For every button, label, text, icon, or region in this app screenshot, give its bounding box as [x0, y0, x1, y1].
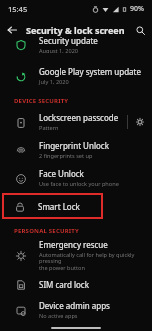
staticText: Use face to unlock your phone	[39, 180, 119, 188]
button[interactable]: Emergency rescue	[0, 238, 152, 272]
button[interactable]: Smart Lock	[2, 193, 103, 219]
staticText: 2 fingerprints set up	[39, 152, 93, 160]
staticText: 15:45	[8, 4, 28, 14]
staticText: Automatically call for help by quickly p…	[39, 251, 142, 272]
button[interactable]: SIM card lock	[0, 272, 152, 296]
staticText: Google Play system update	[39, 66, 142, 77]
button[interactable]: Google Play system update	[0, 62, 152, 90]
button[interactable]: Back	[0, 18, 24, 42]
staticText: August 1, 2020	[39, 47, 79, 53]
staticText: Device admin apps	[39, 300, 110, 311]
staticText: Smart Lock	[38, 201, 80, 212]
button[interactable]: Device admin apps	[0, 296, 152, 324]
staticText: PERSONAL SECURITY	[14, 227, 79, 235]
staticText: Security update	[39, 35, 98, 46]
button[interactable]: Fingerprint Unlock	[0, 136, 152, 164]
staticText: DEVICE SECURITY	[14, 97, 69, 105]
staticText: Security & lock screen	[26, 24, 125, 36]
staticText: Pattern	[39, 124, 59, 132]
staticText: Fingerprint Unlock	[39, 140, 109, 151]
staticText: Lockscreen passcode	[39, 112, 119, 123]
button[interactable]: Settings	[128, 108, 152, 136]
staticText: Face Unlock	[39, 168, 84, 179]
button[interactable]: Security update	[0, 44, 152, 62]
staticText: No active apps	[39, 312, 78, 320]
button[interactable]: Lockscreen passcode	[0, 108, 152, 136]
staticText: 90%	[130, 4, 144, 14]
staticText: Emergency rescue	[39, 239, 108, 250]
button[interactable]: Search	[128, 18, 152, 42]
button[interactable]: Face Unlock	[0, 164, 152, 192]
staticText: July 1, 2020	[39, 78, 69, 86]
staticText: SIM card lock	[39, 279, 89, 290]
